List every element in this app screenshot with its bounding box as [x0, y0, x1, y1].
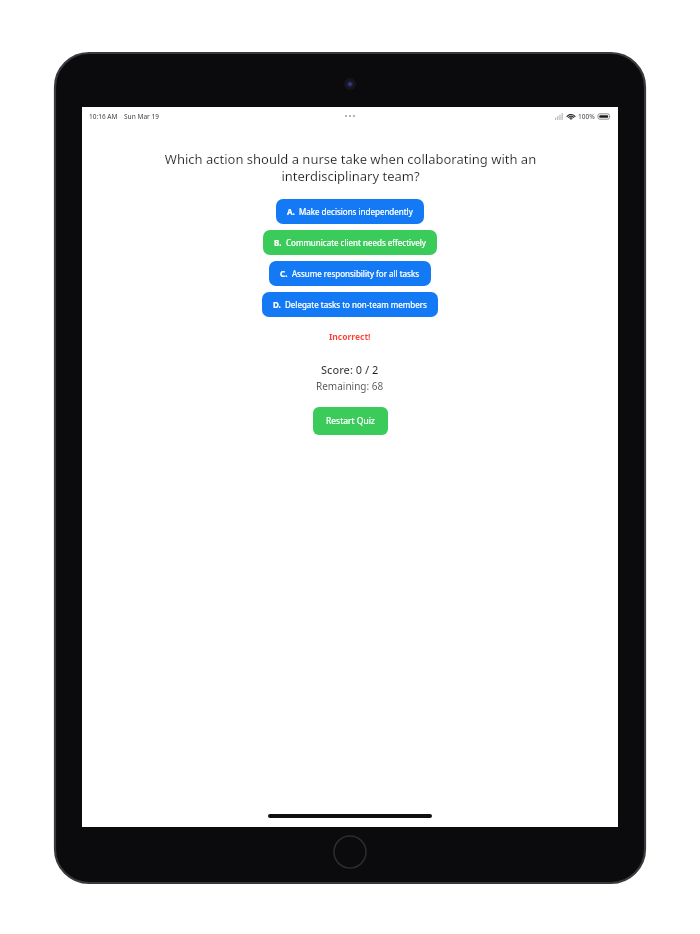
staticText: Sun Mar 19 — [124, 112, 159, 121]
button[interactable]: A. — [276, 199, 424, 224]
staticText: Delegate tasks to non-team members — [285, 299, 427, 310]
staticText: Make decisions independently — [299, 206, 413, 217]
staticText: Restart Quiz — [326, 415, 375, 427]
staticText: Score: 0 / 2 — [321, 362, 379, 377]
button[interactable]: B. — [263, 230, 437, 255]
staticText: Assume responsibility for all tasks — [292, 268, 420, 279]
staticText: 10:16 AM — [89, 112, 118, 121]
button[interactable]: Restart Quiz — [313, 407, 388, 435]
button[interactable]: C. — [269, 261, 431, 286]
staticText: 100% — [578, 112, 595, 121]
button[interactable]: D. — [262, 292, 438, 317]
staticText: Remaining: 68 — [316, 379, 384, 393]
staticText: Communicate client needs effectively — [286, 237, 426, 248]
other: Home — [333, 835, 367, 869]
staticText: C. — [280, 268, 288, 279]
staticText: Incorrect! — [329, 331, 371, 343]
staticText: D. — [273, 299, 281, 310]
staticText: A. — [287, 206, 295, 217]
staticText: B. — [274, 237, 282, 248]
staticText: Which action should a nurse take when co… — [158, 150, 543, 185]
